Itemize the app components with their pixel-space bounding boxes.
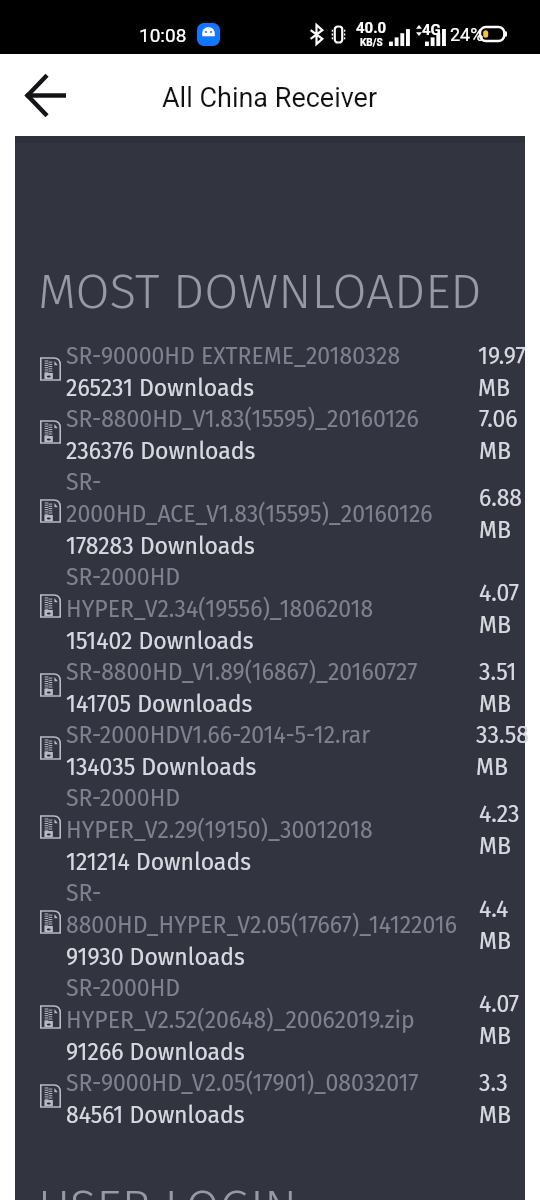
staticText: USER LOGIN [38, 1178, 298, 1200]
button[interactable]: SR-2000HD [15, 561, 525, 656]
staticText: MB [479, 1101, 511, 1129]
staticText: SR-90000HD EXTREME_20180328 [66, 342, 401, 370]
staticText: MB [476, 753, 508, 781]
staticText: 24% [450, 24, 484, 45]
staticText: 151402 Downloads [66, 627, 254, 655]
staticText: 19.97 [478, 342, 526, 370]
staticText: 91266 Downloads [66, 1038, 245, 1066]
staticText: 134035 Downloads [66, 753, 257, 781]
staticText: 4.07 [479, 990, 520, 1018]
staticText: MB [479, 690, 511, 718]
staticText: 40.0 [356, 19, 387, 37]
staticText: MB [479, 832, 511, 860]
staticText: 84561 Downloads [66, 1101, 245, 1129]
staticText: MB [479, 927, 511, 955]
staticText: SR-2000HD [66, 974, 181, 1002]
staticText: HYPER_V2.34(19556)_18062018 [66, 595, 374, 623]
staticText: 141705 Downloads [66, 690, 253, 718]
staticText: 2000HD_ACE_V1.83(15595)_20160126 [66, 500, 433, 528]
staticText: MB [479, 437, 511, 465]
staticText: MB [479, 611, 511, 639]
staticText: SR-8800HD_V1.83(15595)_20160126 [66, 405, 419, 433]
staticText: 3.3 [479, 1069, 508, 1097]
staticText: 4.4 [479, 895, 509, 923]
staticText: 3.51 [479, 658, 517, 686]
staticText: MOST DOWNLOADED [38, 262, 482, 321]
staticText: SR-8800HD_V1.89(16867)_20160727 [66, 658, 418, 686]
staticText: 7.06 [479, 405, 518, 433]
staticText: HYPER_V2.52(20648)_20062019.zip [66, 1006, 415, 1034]
staticText: SR-2000HD [66, 784, 181, 812]
button[interactable]: SR-9000HD_V2.05(17901)_08032017 [15, 1067, 525, 1130]
button[interactable]: SR-2000HD [15, 972, 525, 1067]
button[interactable]: SR-90000HD EXTREME_20180328 [15, 340, 525, 403]
button[interactable]: SR-2000HDV1.66-2014-5-12.rar [15, 719, 525, 782]
staticText: SR-2000HDV1.66-2014-5-12.rar [66, 721, 371, 749]
staticText: SR-9000HD_V2.05(17901)_08032017 [66, 1069, 419, 1097]
staticText: SR- [66, 468, 102, 496]
staticText: 4.07 [479, 579, 520, 607]
staticText: 265231 Downloads [66, 374, 255, 402]
staticText: 91930 Downloads [66, 943, 245, 971]
staticText: HYPER_V2.29(19150)_30012018 [66, 816, 373, 844]
button[interactable]: SR- [15, 877, 525, 972]
staticText: SR-2000HD [66, 563, 181, 591]
staticText: 33.58 [476, 721, 529, 749]
staticText: 236376 Downloads [66, 437, 256, 465]
staticText: 121214 Downloads [66, 848, 251, 876]
button[interactable]: SR-8800HD_V1.83(15595)_20160126 [15, 403, 525, 466]
staticText: KB/S [360, 37, 383, 49]
staticText: 10:08 [139, 24, 187, 46]
button[interactable]: SR-2000HD [15, 782, 525, 877]
staticText: MB [479, 1022, 511, 1050]
staticText: SR- [66, 879, 102, 907]
button[interactable]: SR-8800HD_V1.89(16867)_20160727 [15, 656, 525, 719]
button[interactable]: Back [14, 64, 76, 126]
staticText: 178283 Downloads [66, 532, 255, 560]
staticText: MB [478, 374, 510, 402]
button[interactable]: SR- [15, 466, 525, 561]
staticText: 4G [422, 21, 441, 39]
staticText: MB [479, 516, 511, 544]
staticText: 6.88 [479, 484, 523, 512]
staticText: 8800HD_HYPER_V2.05(17667)_14122016 [66, 911, 457, 939]
staticText: All China Receiver [162, 82, 378, 114]
staticText: 4.23 [479, 800, 520, 828]
